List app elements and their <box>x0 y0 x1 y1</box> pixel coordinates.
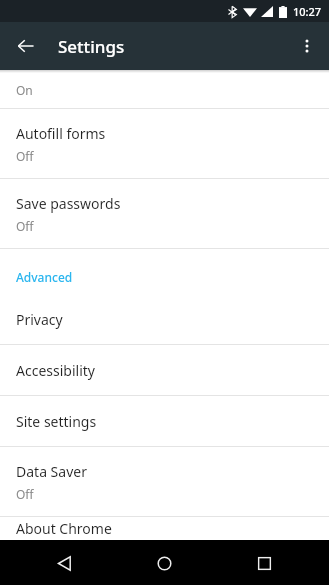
staticText: Off <box>16 148 34 164</box>
button[interactable]: On <box>0 73 329 108</box>
staticText: Data Saver <box>16 462 87 481</box>
staticText: Site settings <box>16 412 97 431</box>
staticText: Autofill forms <box>16 124 106 143</box>
button[interactable]: About Chrome <box>0 517 329 540</box>
button[interactable]: More options <box>291 30 323 62</box>
staticText: Privacy <box>16 310 63 329</box>
button[interactable]: Recent apps <box>242 541 286 585</box>
staticText: Save passwords <box>16 194 121 213</box>
button[interactable]: Home <box>142 541 186 585</box>
button[interactable]: Navigate up <box>10 30 42 62</box>
button[interactable]: Save passwords <box>0 179 329 248</box>
button[interactable]: Autofill forms <box>0 109 329 178</box>
button[interactable]: Privacy <box>0 294 329 344</box>
button[interactable]: Site settings <box>0 396 329 446</box>
staticText: 10:27 <box>293 4 322 19</box>
button[interactable]: Back <box>42 541 86 585</box>
button[interactable]: Accessibility <box>0 345 329 395</box>
staticText: Settings <box>58 35 125 58</box>
button[interactable]: Data Saver <box>0 447 329 516</box>
staticText: Off <box>16 218 34 234</box>
staticText: Accessibility <box>16 361 95 380</box>
staticText: Advanced <box>16 269 73 285</box>
staticText: On <box>16 82 33 98</box>
staticText: About Chrome <box>16 519 112 538</box>
staticText: Off <box>16 486 34 502</box>
